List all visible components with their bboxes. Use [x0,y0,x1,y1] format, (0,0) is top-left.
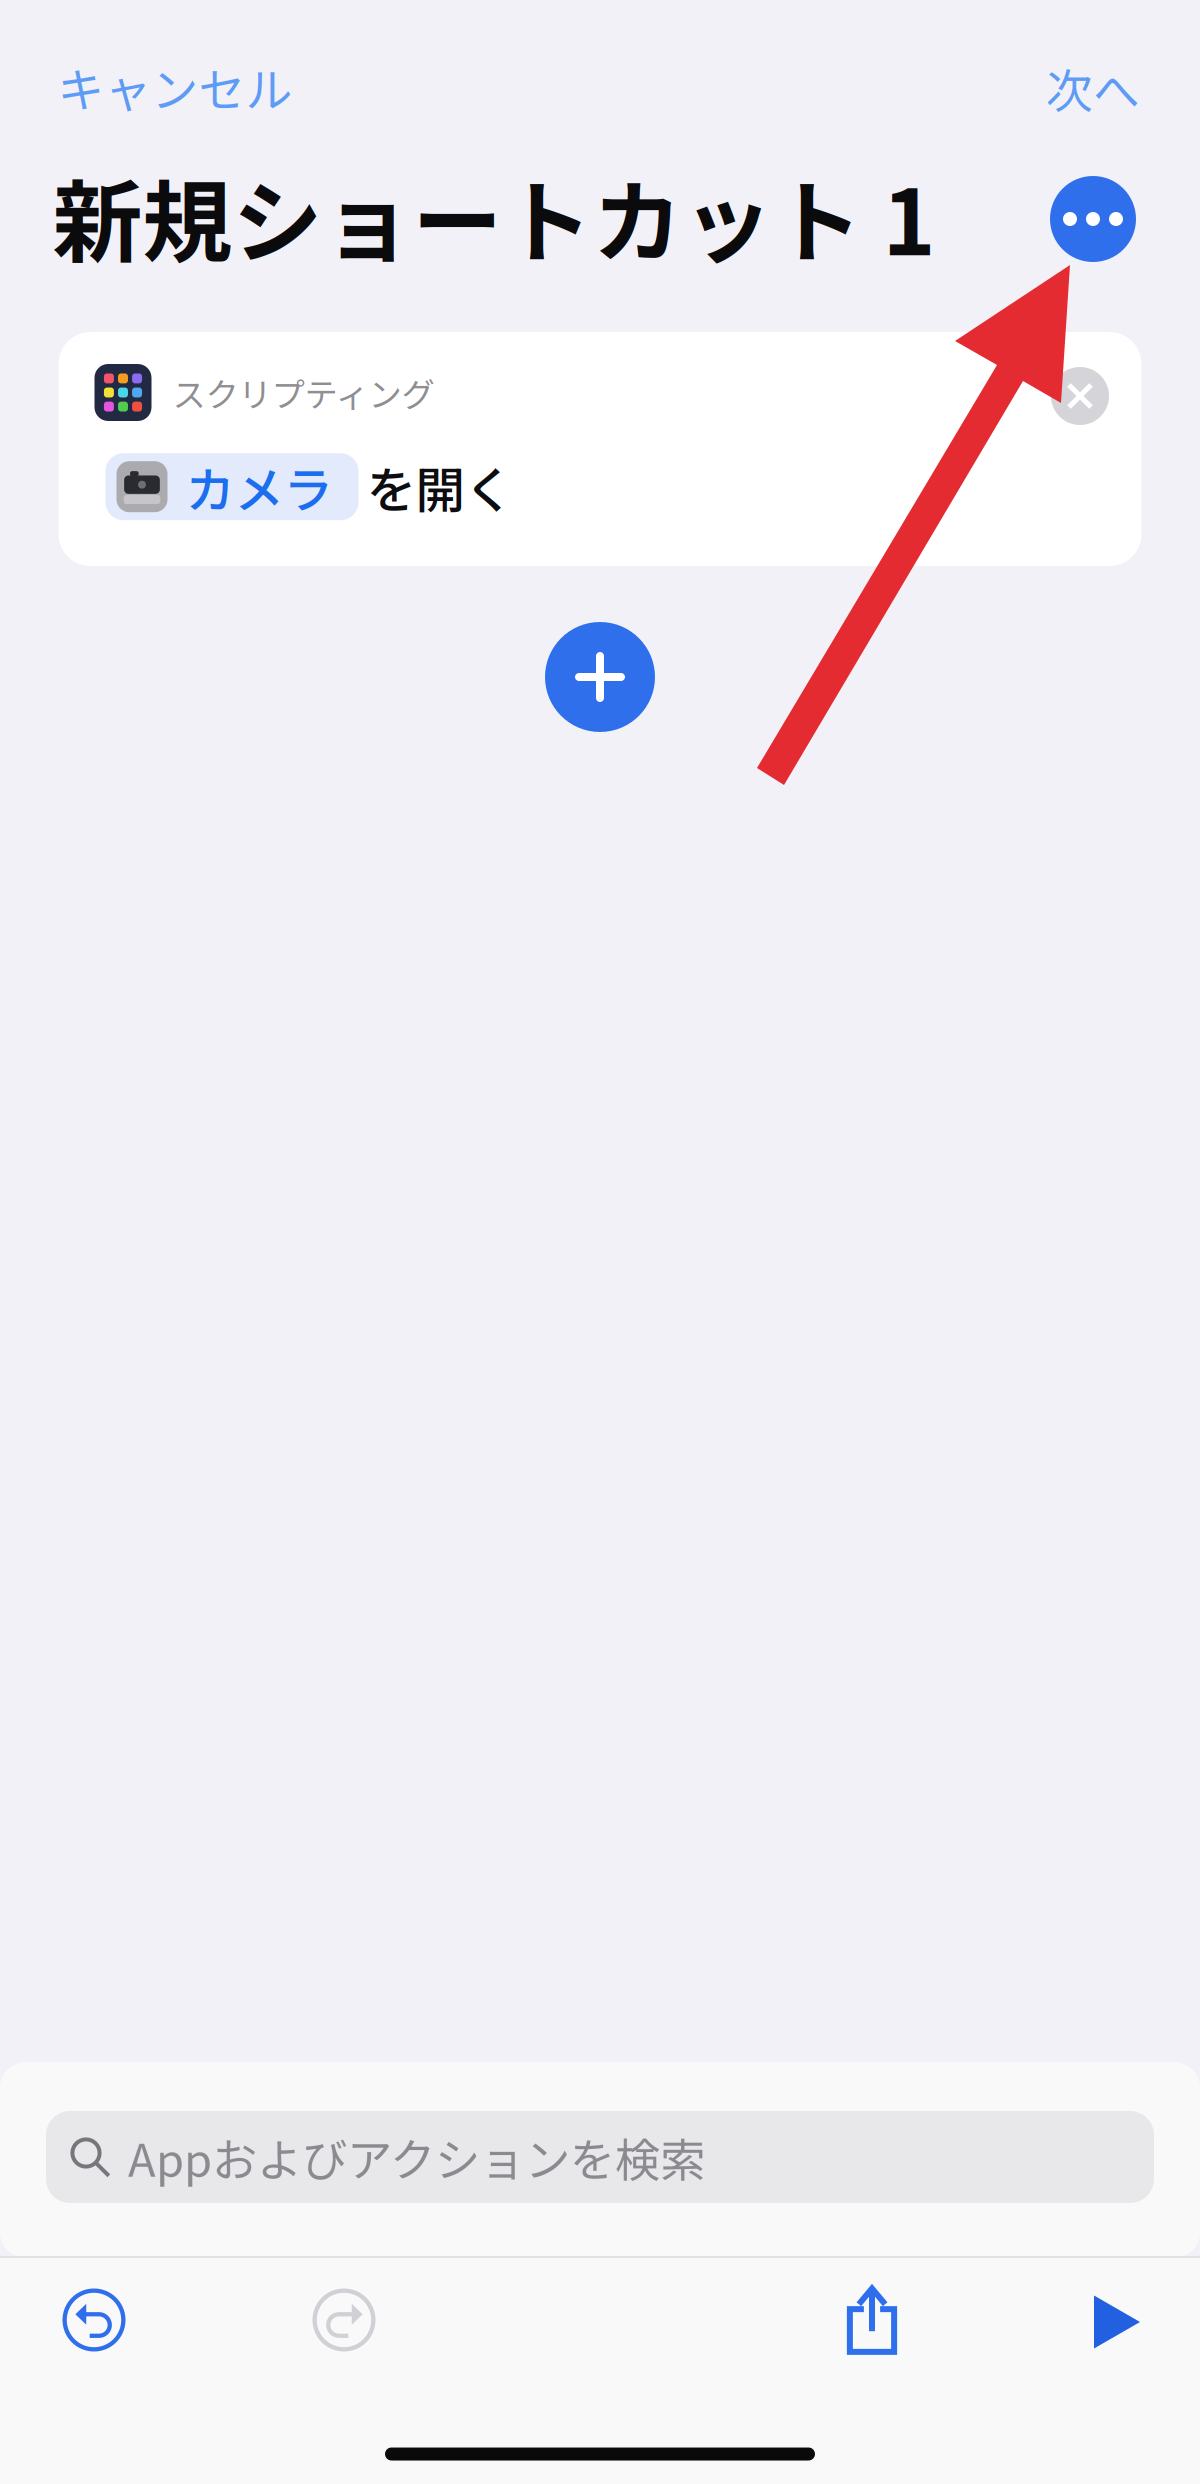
button[interactable]: 次へ [1034,44,1152,132]
staticText: キャンセル [57,53,292,121]
staticText: スクリプティング [172,368,434,417]
button[interactable]: Redo [311,2287,377,2353]
button[interactable]: More options [1050,176,1136,262]
staticText: 次へ [1046,54,1140,122]
staticText: 新規ショートカット 1 [52,151,935,281]
button[interactable]: Remove action [1051,367,1109,425]
staticText: Appおよびアクションを検索 [128,2124,705,2190]
button[interactable]: Add action [545,622,655,732]
staticText: カメラ [185,451,332,522]
button[interactable]: Share [844,2285,900,2355]
staticText: を開く [366,451,513,522]
button[interactable]: Undo [61,2287,127,2353]
button[interactable]: Run [1093,2294,1141,2349]
button[interactable]: キャンセル [45,43,304,131]
